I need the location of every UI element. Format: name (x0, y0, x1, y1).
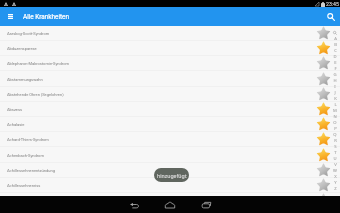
button[interactable]: I (331, 84, 339, 90)
button[interactable]: K (331, 96, 339, 102)
staticText: E (334, 60, 337, 66)
button[interactable]: Favorite (315, 87, 332, 102)
staticText: Aarskog-Scott-Syndrom (7, 31, 315, 36)
staticText: Z (334, 186, 337, 192)
staticText: B (334, 42, 337, 48)
button[interactable]: F (331, 66, 339, 72)
button[interactable]: Abduzensparese (0, 41, 340, 56)
button[interactable]: Favorite (315, 117, 332, 132)
button[interactable]: Favorite (315, 56, 332, 71)
button[interactable]: C (331, 48, 339, 54)
button[interactable]: Back (120, 196, 148, 213)
button[interactable]: M (331, 108, 339, 114)
button[interactable]: Home (156, 196, 184, 213)
button[interactable]: X (331, 174, 339, 180)
staticText: F (334, 66, 337, 72)
button[interactable]: Recent apps (192, 196, 220, 213)
button[interactable]: Open navigation menu (0, 7, 20, 26)
button[interactable]: B (331, 42, 339, 48)
button[interactable]: Abszess (0, 102, 340, 117)
staticText: Abszess (7, 107, 315, 112)
staticText: V (334, 162, 337, 168)
button[interactable]: Favorite (315, 72, 332, 87)
button[interactable]: A (331, 36, 339, 42)
staticText: I (334, 84, 336, 90)
button[interactable]: Y (331, 180, 339, 186)
staticText: Abduzensparese (7, 46, 315, 51)
staticText: Achenbach-Syndrom (7, 153, 315, 158)
staticText: Achondroplasie (7, 198, 315, 203)
button[interactable]: Favorite (315, 193, 332, 208)
button[interactable]: U (331, 156, 339, 162)
button[interactable]: Z (331, 186, 339, 192)
staticText: G (333, 72, 337, 78)
button[interactable]: Favorite (315, 102, 332, 117)
staticText: Abstammungswahn (7, 77, 315, 82)
staticText: Achard-Thiers-Syndrom (7, 137, 315, 142)
button[interactable]: V (331, 162, 339, 168)
button[interactable]: Q (331, 132, 339, 138)
button[interactable]: Abstehende Ohren (Segelohren) (0, 87, 340, 102)
button[interactable]: Achalasie (0, 117, 340, 132)
staticText: O (333, 120, 337, 126)
button[interactable]: Achillessehnenriss (0, 178, 340, 193)
button[interactable]: E (331, 60, 339, 66)
staticText: M (333, 108, 337, 114)
staticText: U (333, 156, 337, 162)
staticText: D (333, 54, 337, 60)
button[interactable]: Achillessehnenentzündung (0, 163, 340, 178)
button[interactable]: Achenbach-Syndrom (0, 148, 340, 163)
button[interactable]: P (331, 126, 339, 132)
button[interactable]: Aarskog-Scott-Syndrom (0, 26, 340, 41)
button[interactable]: Favorite (315, 178, 332, 193)
button[interactable]: Achard-Thiers-Syndrom (0, 132, 340, 147)
button[interactable]: O (331, 120, 339, 126)
staticText: Achillessehnenriss (7, 183, 315, 188)
staticText: hinzugefügt (157, 172, 187, 179)
staticText: K (334, 96, 337, 102)
staticText: R (334, 138, 337, 144)
staticText: T (334, 150, 337, 156)
staticText: W (333, 168, 337, 174)
button[interactable]: J (331, 90, 339, 96)
button[interactable]: Search index (331, 30, 339, 36)
staticText: A (334, 36, 337, 42)
button[interactable]: R (331, 138, 339, 144)
button[interactable]: Favorite (315, 148, 332, 163)
button[interactable]: S (331, 144, 339, 150)
button[interactable]: Favorite (315, 26, 332, 41)
staticText: Achalasie (7, 122, 315, 127)
button[interactable]: H (331, 78, 339, 84)
staticText: H (333, 78, 337, 84)
button[interactable]: T (331, 150, 339, 156)
button[interactable]: Achondroplasie (0, 193, 340, 208)
staticText: X (334, 174, 337, 180)
button[interactable]: D (331, 54, 339, 60)
button[interactable]: Favorite (315, 163, 332, 178)
staticText: 23:45 (326, 1, 339, 7)
staticText: Ablepharon-Makrostomie-Syndrom (7, 61, 315, 66)
button[interactable]: W (331, 168, 339, 174)
staticText: J (334, 90, 336, 96)
button[interactable]: Search (322, 7, 340, 26)
button[interactable]: N (331, 114, 339, 120)
button[interactable]: Ablepharon-Makrostomie-Syndrom (0, 56, 340, 71)
staticText: Achillessehnenentzündung (7, 168, 315, 173)
staticText: C (334, 48, 337, 54)
staticText: Alle Krankheiten (23, 13, 70, 21)
button[interactable]: Favorite (315, 132, 332, 147)
staticText: Q (333, 132, 337, 138)
button[interactable]: Abstammungswahn (0, 72, 340, 87)
staticText: S (334, 144, 337, 150)
staticText: N (333, 114, 337, 120)
button[interactable]: G (331, 72, 339, 78)
button[interactable]: L (331, 102, 339, 108)
staticText: L (334, 102, 337, 108)
staticText: Abstehende Ohren (Segelohren) (7, 92, 315, 97)
staticText: Y (334, 180, 337, 186)
staticText: P (334, 126, 337, 132)
button[interactable]: Favorite (315, 41, 332, 56)
